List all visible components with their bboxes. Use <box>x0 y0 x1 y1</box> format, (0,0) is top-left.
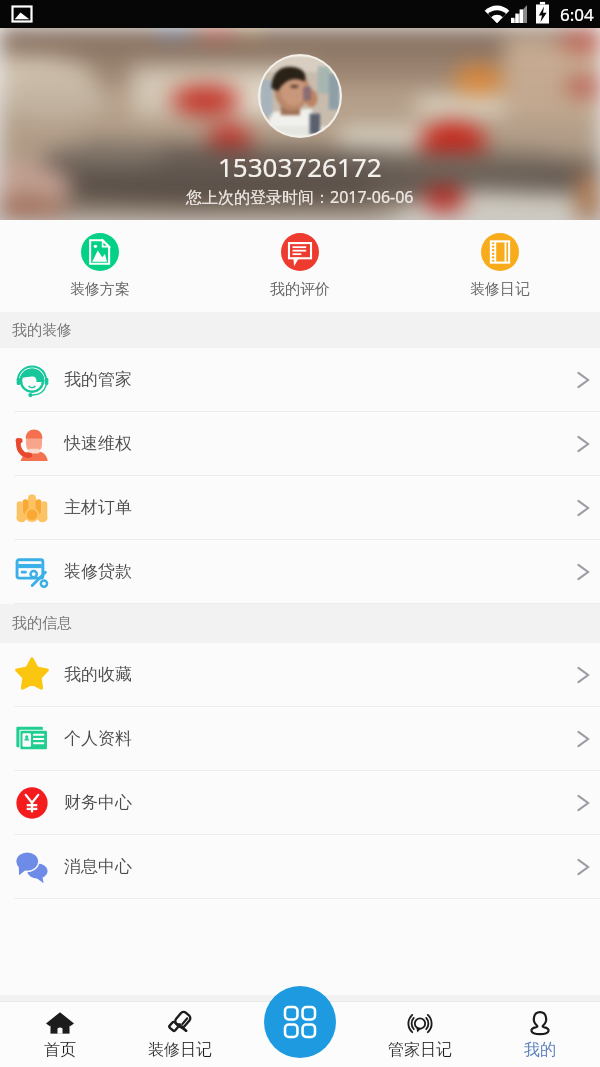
button[interactable]: 我的管家 <box>0 348 600 412</box>
staticText: 装修日记 <box>470 280 530 299</box>
button[interactable]: 快速维权 <box>0 412 600 476</box>
button[interactable]: All services <box>264 986 336 1058</box>
button[interactable]: 首页 <box>0 1001 120 1067</box>
staticText: 我的装修 <box>12 321 72 340</box>
staticText: 我的管家 <box>64 369 132 390</box>
staticText: 我的评价 <box>270 280 330 299</box>
staticText: 您上次的登录时间：2017-06-06 <box>186 186 414 208</box>
button[interactable]: 消息中心 <box>0 835 600 899</box>
staticText: 装修贷款 <box>64 561 132 582</box>
button[interactable]: 装修贷款 <box>0 540 600 604</box>
button[interactable]: 装修日记 <box>400 220 600 312</box>
staticText: 我的收藏 <box>64 664 132 685</box>
button[interactable]: 个人资料 <box>0 707 600 771</box>
staticText: 财务中心 <box>64 792 132 813</box>
button[interactable]: 我的收藏 <box>0 643 600 707</box>
button[interactable]: 我的评价 <box>200 220 400 312</box>
staticText: 我的信息 <box>12 614 72 633</box>
staticText: 个人资料 <box>64 728 132 749</box>
button[interactable]: 我的 <box>480 1001 600 1067</box>
staticText: 6:04 <box>560 3 594 26</box>
button[interactable]: 主材订单 <box>0 476 600 540</box>
button[interactable]: 装修方案 <box>0 220 200 312</box>
staticText: 管家日记 <box>388 1040 452 1060</box>
staticText: 快速维权 <box>64 433 132 454</box>
staticText: 装修方案 <box>70 280 130 299</box>
staticText: 首页 <box>44 1040 76 1060</box>
staticText: 消息中心 <box>64 856 132 877</box>
staticText: 主材订单 <box>64 497 132 518</box>
button[interactable]: 装修日记 <box>120 1001 240 1067</box>
button[interactable]: 财务中心 <box>0 771 600 835</box>
staticText: 装修日记 <box>148 1040 212 1060</box>
staticText: 15303726172 <box>218 149 382 184</box>
button[interactable]: Profile photo <box>260 56 340 136</box>
staticText: 我的 <box>524 1040 556 1060</box>
button[interactable]: 管家日记 <box>360 1001 480 1067</box>
